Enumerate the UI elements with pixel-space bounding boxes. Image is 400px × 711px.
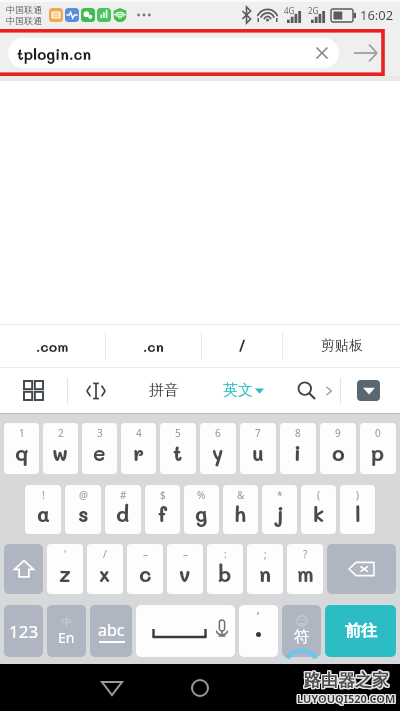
staticText: q: [15, 439, 29, 466]
button[interactable]: 3: [82, 423, 117, 474]
staticText: t: [173, 439, 183, 466]
staticText: 3: [97, 426, 103, 440]
button[interactable]: @: [65, 485, 101, 534]
button[interactable]: *: [262, 485, 297, 534]
button[interactable]: abc: [90, 605, 132, 657]
button[interactable]: Home: [184, 672, 216, 704]
button[interactable]: 9: [320, 423, 356, 474]
button[interactable]: Go: [352, 39, 380, 67]
button[interactable]: 7: [240, 423, 276, 474]
staticText: 路由器之家: [303, 671, 388, 692]
staticText: &: [237, 488, 245, 502]
staticText: 符: [294, 627, 310, 647]
button[interactable]: %: [184, 485, 219, 534]
staticText: 中国联通: [6, 4, 42, 15]
staticText: LUYOUQI520.COM: [298, 690, 397, 705]
button[interactable]: :: [207, 544, 243, 594]
staticText: 路由器之家: [303, 669, 388, 690]
staticText: 5: [175, 426, 181, 440]
staticText: ': [64, 547, 67, 561]
staticText: ’: [257, 607, 260, 625]
staticText: r: [133, 439, 144, 466]
staticText: n: [259, 560, 272, 587]
button[interactable]: Move cursor: [76, 368, 116, 413]
staticText: :: [224, 547, 227, 561]
staticText: e: [93, 439, 106, 466]
staticText: ): [356, 488, 359, 502]
staticText: 前往: [345, 621, 377, 641]
button[interactable]: Keyboard layouts: [13, 368, 53, 413]
button[interactable]: Shift: [4, 544, 43, 594]
staticText: (: [317, 488, 320, 502]
button[interactable]: 拼音: [139, 368, 189, 413]
button[interactable]: tplogin.cn: [8, 38, 339, 68]
staticText: j: [276, 500, 284, 527]
staticText: LUYOUQI520.COM: [297, 691, 396, 706]
button[interactable]: –: [167, 544, 203, 594]
staticText: l: [355, 500, 361, 527]
staticText: b: [218, 560, 232, 587]
button[interactable]: 英文: [213, 368, 273, 413]
staticText: .com: [36, 337, 69, 355]
staticText: m: [297, 560, 314, 587]
staticText: –: [143, 547, 148, 561]
staticText: LUYOUQI520.COM: [296, 691, 395, 706]
button[interactable]: .cn: [106, 325, 201, 367]
staticText: a: [37, 500, 50, 527]
button[interactable]: 符: [282, 605, 321, 657]
button[interactable]: 4: [121, 423, 156, 474]
button[interactable]: 5: [160, 423, 196, 474]
staticText: 123: [9, 620, 39, 643]
staticText: w: [52, 439, 69, 466]
button[interactable]: 123: [4, 605, 43, 657]
button[interactable]: /: [202, 325, 282, 367]
button[interactable]: 6: [200, 423, 236, 474]
staticText: 2: [58, 426, 64, 440]
button[interactable]: Search: [288, 368, 324, 413]
button[interactable]: .com: [0, 325, 105, 367]
button[interactable]: 前往: [325, 605, 396, 657]
button[interactable]: 中: [47, 605, 86, 657]
button[interactable]: #: [105, 485, 141, 534]
staticText: d: [116, 500, 130, 527]
staticText: abc: [98, 619, 125, 641]
staticText: 路由器之家: [303, 670, 388, 691]
staticText: 1: [19, 426, 25, 440]
button[interactable]: ): [340, 485, 375, 534]
button[interactable]: ': [47, 544, 83, 594]
staticText: i: [294, 439, 302, 466]
button[interactable]: $: [145, 485, 180, 534]
button[interactable]: Hide keyboard: [349, 368, 388, 413]
button[interactable]: –: [127, 544, 163, 594]
button[interactable]: Clear: [310, 41, 334, 65]
button[interactable]: ;: [247, 544, 283, 594]
button[interactable]: !: [25, 485, 61, 534]
staticText: 4: [136, 426, 142, 440]
staticText: /: [238, 337, 247, 355]
button[interactable]: 0: [360, 423, 396, 474]
staticText: f: [158, 500, 167, 527]
staticText: o: [332, 439, 345, 466]
button[interactable]: /: [87, 544, 123, 594]
button[interactable]: 1: [4, 423, 39, 474]
staticText: 中国联通: [6, 15, 42, 26]
button[interactable]: Space: [136, 605, 235, 657]
staticText: /: [103, 547, 107, 561]
staticText: LUYOUQI520.COM: [298, 691, 397, 706]
button[interactable]: 8: [280, 423, 316, 474]
button[interactable]: (: [301, 485, 336, 534]
staticText: k: [313, 500, 325, 527]
staticText: LUYOUQI520.COM: [296, 692, 395, 707]
button[interactable]: Back: [96, 672, 128, 704]
button[interactable]: ?: [287, 544, 323, 594]
staticText: ;: [264, 547, 267, 561]
button[interactable]: Backspace: [327, 544, 396, 594]
staticText: tplogin.cn: [17, 44, 92, 63]
button[interactable]: 剪贴板: [283, 325, 400, 367]
staticText: LUYOUQI520.COM: [297, 692, 396, 707]
staticText: 路由器之家: [305, 670, 390, 691]
button[interactable]: 2: [43, 423, 78, 474]
button[interactable]: &: [223, 485, 258, 534]
staticText: s: [78, 500, 89, 527]
button[interactable]: Period: [239, 605, 278, 657]
